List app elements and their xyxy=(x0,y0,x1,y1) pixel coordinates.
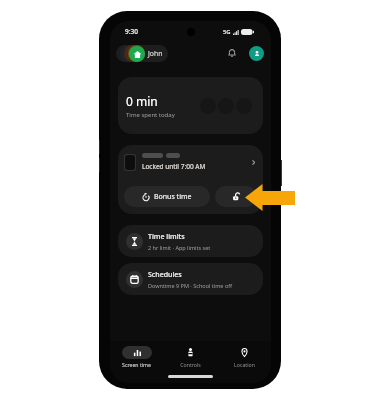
button[interactable]: Location xyxy=(217,346,271,368)
staticText: Downtime 9 PM · School time off xyxy=(148,282,233,289)
staticText: Time limits xyxy=(148,232,185,242)
staticText: John xyxy=(148,49,163,58)
button[interactable]: Schedules xyxy=(118,263,263,295)
button[interactable]: Screen time xyxy=(110,346,163,368)
other: Pointer arrow xyxy=(245,184,295,211)
staticText: Location xyxy=(234,361,255,368)
staticText: 0 min xyxy=(126,93,158,109)
staticText: Screen time xyxy=(122,361,151,368)
button[interactable]: Account xyxy=(249,46,264,61)
button[interactable]: Unlock device xyxy=(215,186,257,207)
staticText: Time spent today xyxy=(126,111,175,119)
staticText: Schedules xyxy=(148,270,182,280)
staticText: Bonus time xyxy=(154,192,192,202)
button[interactable]: 0 min xyxy=(118,77,263,134)
button[interactable]: Time limits xyxy=(118,225,263,257)
button[interactable]: Locked until 7:00 AM xyxy=(124,153,257,171)
button[interactable]: Controls xyxy=(163,346,217,368)
button[interactable]: John xyxy=(116,45,168,62)
staticText: 2 hr limit · App limits set xyxy=(148,244,211,251)
staticText: Controls xyxy=(180,361,201,368)
staticText: Locked until 7:00 AM xyxy=(142,162,206,171)
staticText: 9:30 xyxy=(125,27,138,36)
staticText: 5G xyxy=(223,28,231,36)
button[interactable]: Notifications xyxy=(224,45,240,61)
button[interactable]: Bonus time xyxy=(124,186,210,207)
